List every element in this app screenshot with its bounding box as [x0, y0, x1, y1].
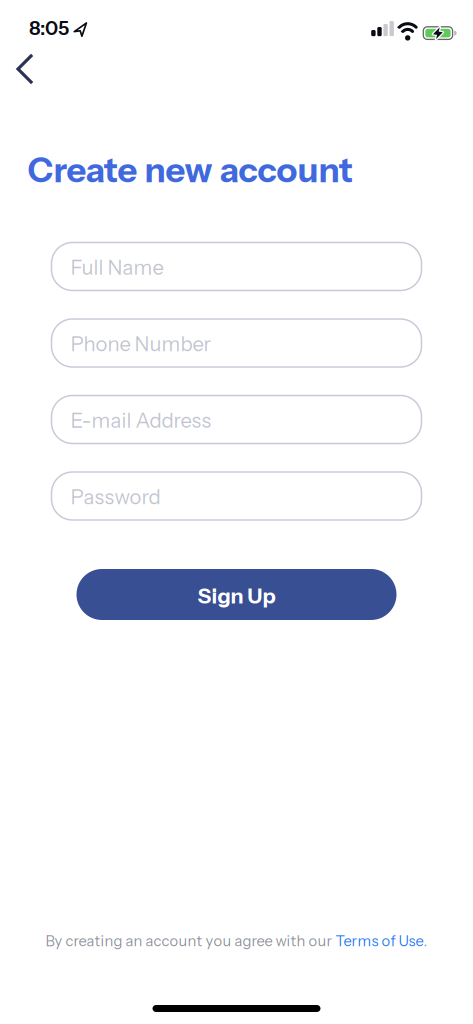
- staticText: 8:05: [29, 16, 69, 40]
- staticText: Terms of Use: [335, 932, 423, 950]
- staticText: E-mail Address: [70, 408, 211, 433]
- button[interactable]: Password: [51, 472, 421, 520]
- staticText: Sign Up: [197, 583, 275, 609]
- staticText: Password: [70, 485, 160, 509]
- staticText: Phone Number: [70, 332, 211, 356]
- button[interactable]: Full Name: [51, 242, 421, 290]
- staticText: .: [423, 932, 427, 950]
- button[interactable]: Back: [6, 46, 50, 90]
- button[interactable]: Sign Up: [76, 569, 396, 620]
- staticText: Create new account: [27, 149, 352, 191]
- button[interactable]: Phone Number: [51, 319, 421, 367]
- staticText: Full Name: [70, 255, 163, 280]
- staticText: By creating an account you agree with ou…: [45, 932, 335, 950]
- button[interactable]: E-mail Address: [51, 395, 421, 443]
- button[interactable]: Terms of Use: [335, 932, 423, 950]
